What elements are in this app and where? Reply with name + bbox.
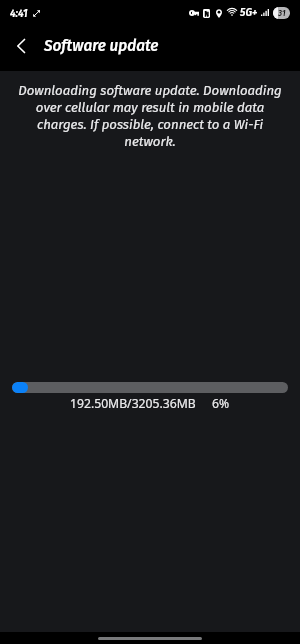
staticText: 31 bbox=[278, 8, 286, 18]
staticText: 6% bbox=[212, 395, 230, 412]
staticText: 4:41 bbox=[10, 7, 28, 19]
other: Wi-Fi bbox=[225, 7, 239, 17]
other: NFC bbox=[203, 9, 210, 18]
staticText: 5G+ bbox=[240, 6, 258, 18]
staticText: Downloading software update. Downloading… bbox=[17, 83, 283, 150]
staticText: Software update bbox=[44, 37, 159, 55]
staticText: 192.50MB/3205.36MB bbox=[70, 395, 196, 412]
button[interactable]: Back bbox=[6, 31, 36, 61]
other: Location bbox=[216, 9, 222, 18]
other: VPN bbox=[189, 10, 199, 16]
